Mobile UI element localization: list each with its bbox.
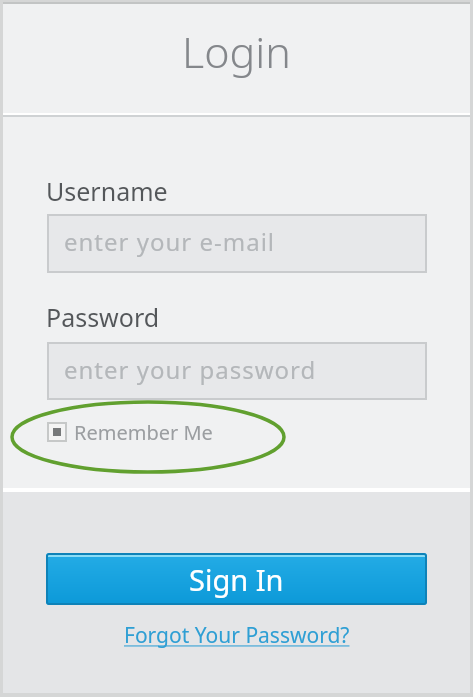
button[interactable]: Forgot Your Password? [124,621,350,650]
button[interactable]: enter your e-mail [47,214,427,273]
staticText: Remember Me [74,419,213,446]
staticText: enter your e-mail [64,225,276,258]
staticText: Username [46,174,168,208]
button[interactable] [47,422,67,442]
staticText: enter your password [64,353,317,386]
button[interactable]: enter your password [47,342,427,400]
staticText: Password [46,300,160,334]
button[interactable]: Sign In [46,553,427,605]
staticText: Login [182,22,291,81]
staticText: Sign In [189,560,284,599]
